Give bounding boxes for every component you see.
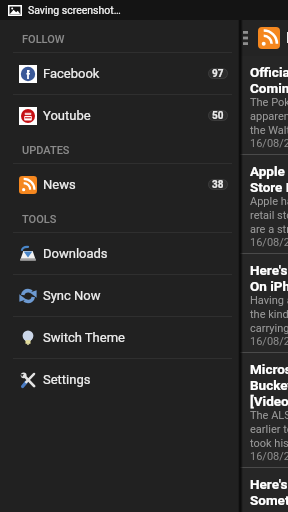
staticText: Facebook [43,66,100,81]
staticText: Saving screenshot… [28,4,121,16]
staticText: Switch Theme [43,330,125,345]
staticText: 16/08/2014 [250,450,288,463]
staticText: Here's Another Story About Something Int… [250,476,288,508]
button[interactable]: Official Pokemon Game Coming To Smartpho… [240,56,288,154]
staticText: Apple has been revamping its retail stor… [250,195,288,236]
button[interactable]: Apple Reportedly Prepping Store Improvem… [240,155,288,253]
button[interactable]: Youtube [0,95,240,136]
staticText: TOOLS [22,213,57,226]
staticText: 97 [212,68,224,79]
staticText: Downloads [43,246,108,261]
button[interactable]: Switch Theme [0,317,240,358]
button[interactable]: Open navigation drawer [240,25,251,51]
button[interactable]: Sync Now [0,275,240,316]
staticText: FOLLOW [22,33,65,46]
staticText: 50 [212,110,224,121]
staticText: Having a hard time adjusting to the kind… [250,294,288,335]
button[interactable]: Facebook [0,53,240,94]
staticText: 16/08/2014 [250,137,288,150]
staticText: The Pokemon Company and Nintendo apparen… [250,96,288,137]
staticText: Here's The Best Way To Type On iPhone [250,262,288,294]
staticText: The ALS Ice Bucket Challenge earlier tod… [250,409,288,450]
staticText: Youtube [43,108,91,123]
button[interactable]: Downloads [0,233,240,274]
staticText: 16/08/2014 [250,335,288,348]
staticText: 16/08/2014 [250,236,288,249]
button[interactable]: News [0,164,240,205]
button[interactable]: Here's The Best Way To Type On iPhone [240,254,288,352]
staticText: Settings [43,372,91,387]
staticText: Sync Now [43,288,101,303]
staticText: Official Pokemon Game Coming To Smartpho… [250,64,288,96]
staticText: Microsoft's CEO Did The Ice Bucket Chall… [250,361,288,409]
staticText: Apple Reportedly Prepping Store Improvem… [250,163,288,195]
staticText: News [43,177,76,192]
staticText: 38 [212,179,224,190]
button[interactable]: Microsoft's CEO Did The Ice Bucket Chall… [240,353,288,467]
button[interactable]: Here's Another Story About Something Int… [240,468,288,512]
button[interactable]: Settings [0,359,240,400]
staticText: UPDATES [22,144,70,157]
staticText: News [286,30,288,46]
